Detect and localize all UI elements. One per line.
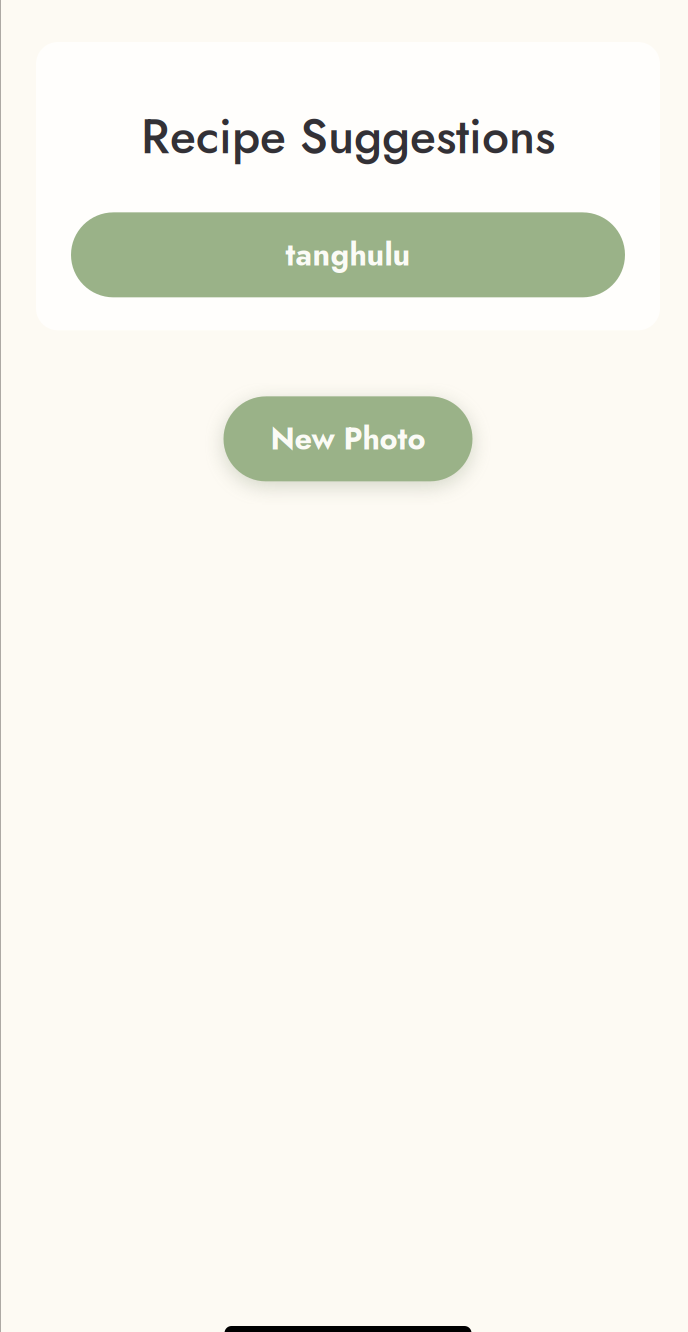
staticText: Recipe Suggestions: [141, 102, 555, 171]
staticText: New Photo: [270, 417, 425, 461]
button[interactable]: tanghulu: [71, 212, 625, 297]
button[interactable]: New Photo: [223, 396, 472, 481]
staticText: tanghulu: [285, 233, 410, 277]
